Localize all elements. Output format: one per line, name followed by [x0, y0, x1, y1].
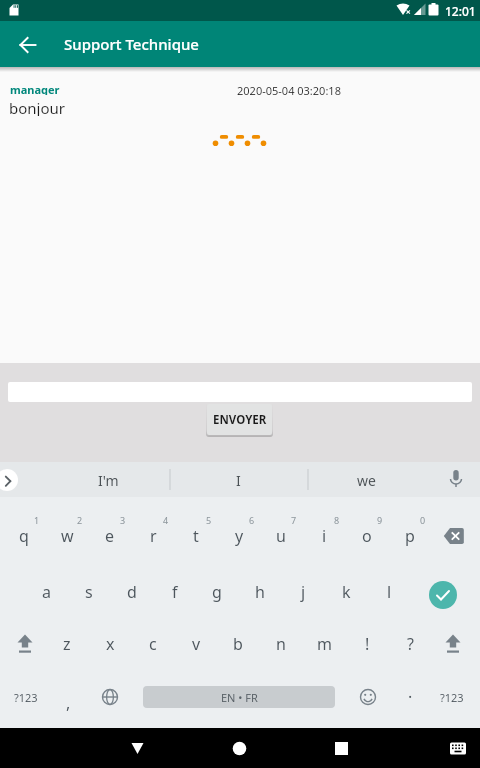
- button[interactable]: q: [3, 514, 45, 558]
- staticText: I: [236, 471, 241, 490]
- staticText: h: [255, 581, 265, 603]
- button[interactable]: [89, 675, 131, 719]
- button[interactable]: v: [175, 622, 217, 666]
- button[interactable]: d: [111, 570, 153, 614]
- staticText: w: [61, 525, 74, 547]
- staticText: I'm: [98, 471, 119, 490]
- staticText: d: [127, 581, 137, 603]
- button[interactable]: [117, 728, 159, 768]
- button[interactable]: w: [46, 514, 88, 558]
- button[interactable]: !: [346, 622, 388, 666]
- staticText: f: [172, 581, 178, 603]
- staticText: b: [233, 633, 243, 655]
- button[interactable]: f: [154, 570, 196, 614]
- button[interactable]: [429, 581, 457, 609]
- staticText: o: [362, 525, 372, 547]
- staticText: ?: [407, 633, 414, 655]
- button[interactable]: p: [389, 514, 431, 558]
- button[interactable]: g: [196, 570, 238, 614]
- button[interactable]: c: [132, 622, 174, 666]
- staticText: EN • FR: [221, 690, 258, 705]
- staticText: t: [193, 525, 199, 547]
- staticText: e: [105, 525, 115, 547]
- staticText: 7: [291, 514, 297, 526]
- staticText: manager: [10, 82, 60, 95]
- button[interactable]: y: [218, 514, 260, 558]
- staticText: n: [276, 633, 286, 655]
- button[interactable]: ?123: [5, 675, 47, 719]
- button[interactable]: [12, 29, 44, 61]
- staticText: ,: [66, 692, 71, 714]
- staticText: 2: [77, 514, 83, 526]
- staticText: 0: [420, 514, 426, 526]
- button[interactable]: i: [303, 514, 345, 558]
- staticText: 5: [206, 514, 212, 526]
- button[interactable]: n: [260, 622, 302, 666]
- button[interactable]: we: [326, 466, 406, 494]
- staticText: r: [150, 525, 157, 547]
- button[interactable]: s: [68, 570, 110, 614]
- staticText: y: [235, 525, 244, 547]
- staticText: 6: [249, 514, 255, 526]
- staticText: !: [365, 633, 370, 655]
- staticText: Support Technique: [64, 34, 199, 54]
- button[interactable]: z: [46, 622, 88, 666]
- staticText: 3: [120, 514, 126, 526]
- button[interactable]: ·: [389, 675, 431, 719]
- button[interactable]: a: [25, 570, 67, 614]
- staticText: 4: [163, 514, 169, 526]
- button[interactable]: EN • FR: [143, 686, 335, 708]
- staticText: k: [342, 581, 351, 603]
- staticText: i: [322, 525, 327, 547]
- button[interactable]: [0, 469, 18, 491]
- button[interactable]: ?: [389, 622, 431, 666]
- button[interactable]: b: [217, 622, 259, 666]
- staticText: z: [63, 633, 71, 655]
- button[interactable]: x: [89, 622, 131, 666]
- staticText: p: [405, 525, 415, 547]
- button[interactable]: u: [260, 514, 302, 558]
- staticText: 2020-05-04 03:20:18: [237, 83, 341, 96]
- staticText: l: [387, 581, 392, 603]
- staticText: g: [212, 581, 222, 603]
- button[interactable]: [4, 622, 46, 666]
- button[interactable]: [347, 675, 389, 719]
- button[interactable]: m: [303, 622, 345, 666]
- button[interactable]: ENVOYER: [207, 404, 272, 435]
- button[interactable]: [320, 728, 362, 768]
- staticText: q: [19, 525, 29, 547]
- button[interactable]: ,: [47, 681, 89, 725]
- staticText: ?123: [14, 690, 38, 705]
- staticText: ?123: [440, 690, 464, 705]
- staticText: j: [301, 581, 306, 603]
- button[interactable]: l: [368, 570, 410, 614]
- staticText: x: [106, 633, 115, 655]
- button[interactable]: r: [132, 514, 174, 558]
- button[interactable]: t: [175, 514, 217, 558]
- staticText: u: [276, 525, 286, 547]
- button[interactable]: I: [198, 466, 278, 494]
- button[interactable]: [440, 728, 476, 768]
- staticText: c: [149, 633, 157, 655]
- staticText: m: [317, 633, 332, 655]
- staticText: s: [85, 581, 93, 603]
- button[interactable]: ?123: [431, 675, 473, 719]
- button[interactable]: [434, 515, 476, 559]
- button[interactable]: e: [89, 514, 131, 558]
- button[interactable]: [432, 622, 474, 666]
- button[interactable]: [218, 728, 260, 768]
- staticText: 8: [334, 514, 340, 526]
- button[interactable]: h: [239, 570, 281, 614]
- button[interactable]: I'm: [68, 466, 148, 494]
- button[interactable]: k: [325, 570, 367, 614]
- staticText: 1: [34, 514, 40, 526]
- button[interactable]: j: [282, 570, 324, 614]
- staticText: ·: [408, 686, 413, 708]
- button[interactable]: o: [346, 514, 388, 558]
- staticText: a: [42, 581, 51, 603]
- staticText: 9: [377, 514, 383, 526]
- staticText: we: [357, 471, 376, 490]
- staticText: 12:01: [445, 3, 476, 18]
- staticText: bonjour: [9, 98, 65, 116]
